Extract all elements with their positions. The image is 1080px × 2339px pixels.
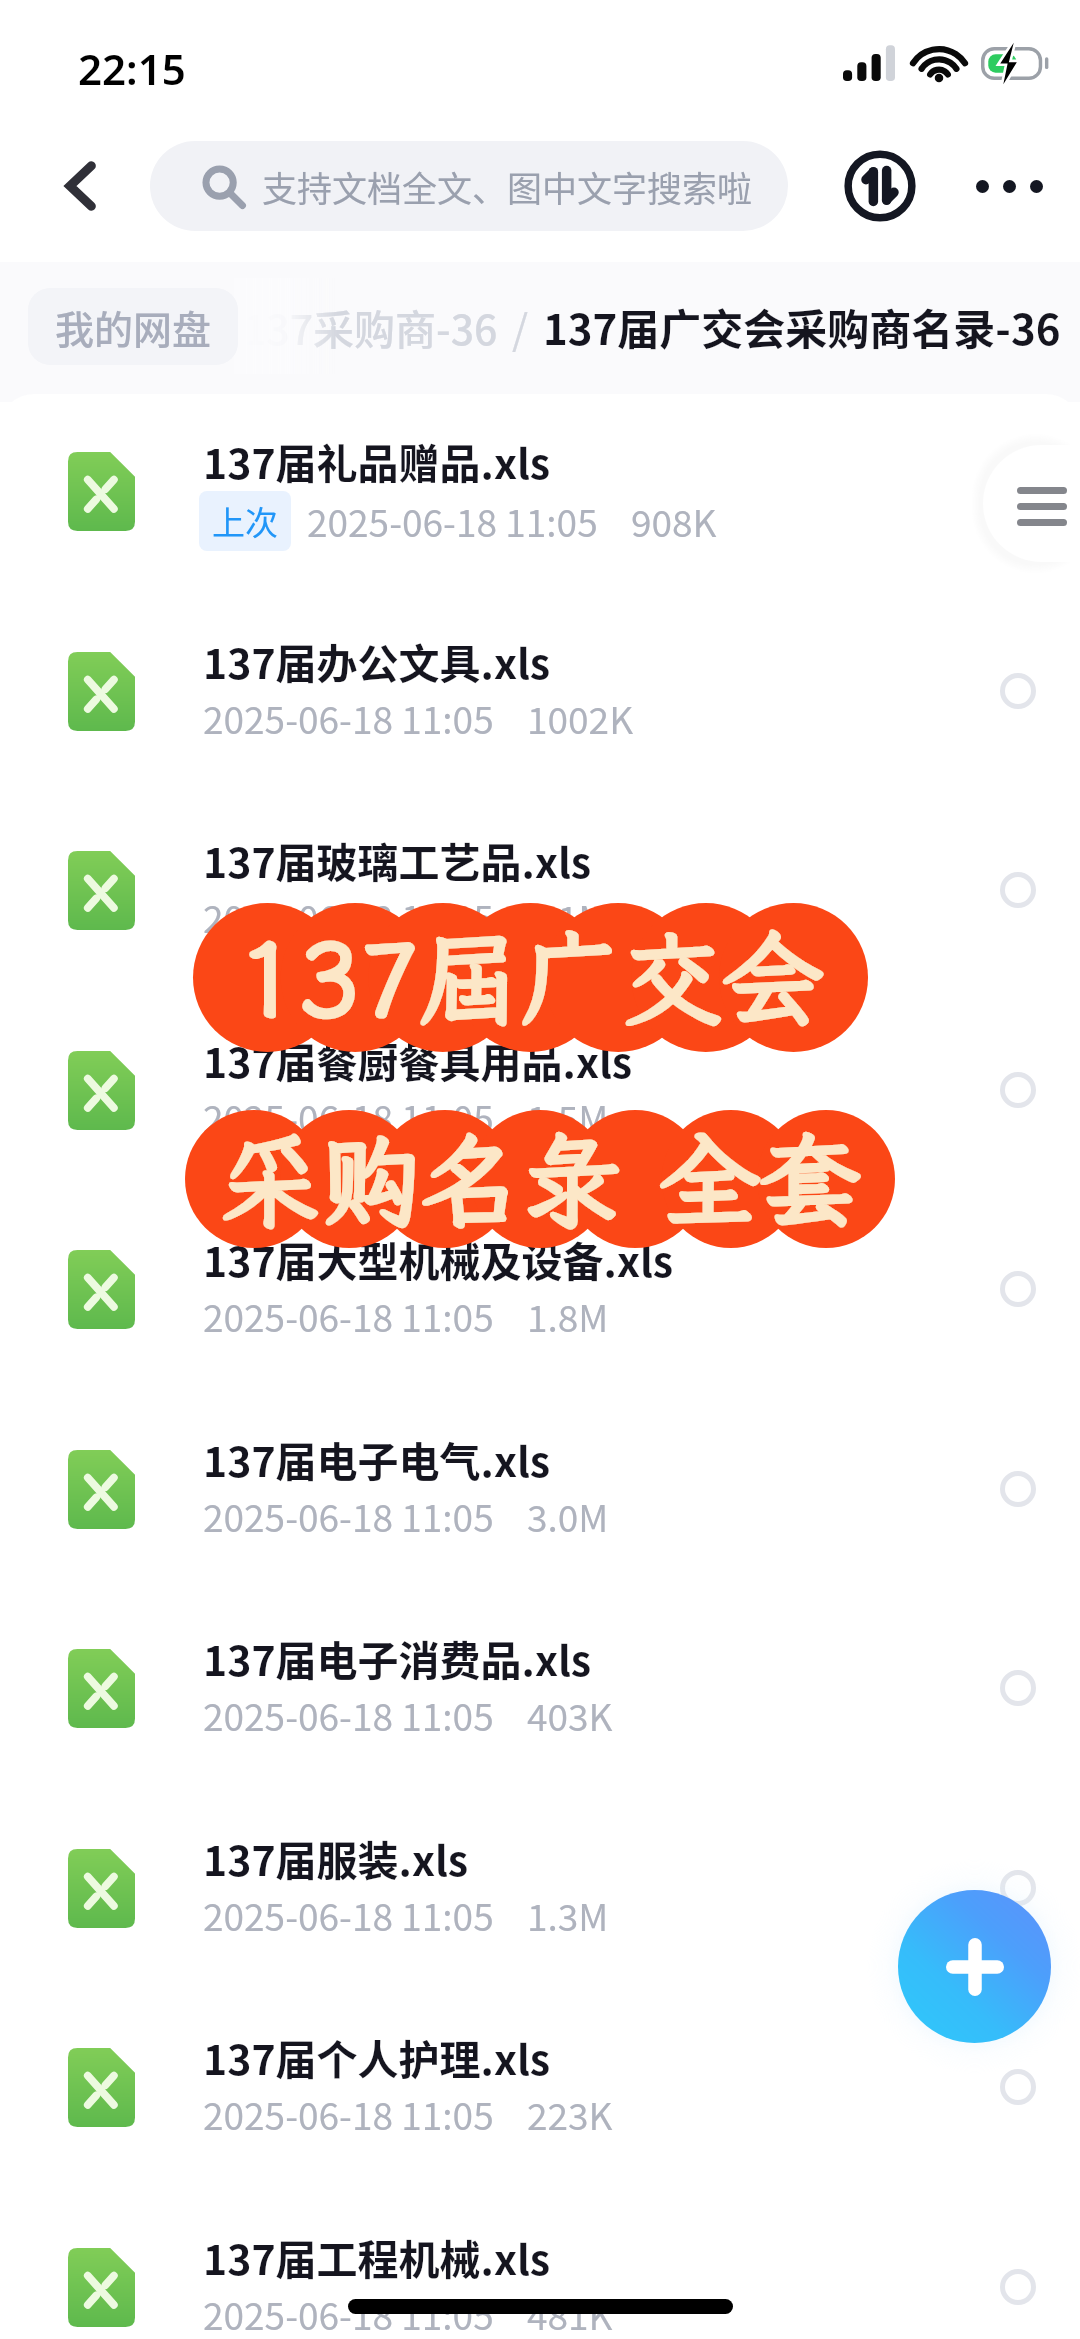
button[interactable]: Select xyxy=(973,2042,1063,2132)
staticText: 2025-06-18 11:05 xyxy=(307,494,598,548)
button[interactable]: Select xyxy=(973,1244,1063,1334)
staticText: 2025-06-18 11:05 xyxy=(203,890,494,944)
staticText: 22:15 xyxy=(78,40,186,97)
staticText: 137采购商-36 xyxy=(243,297,498,356)
button[interactable]: More options xyxy=(940,130,1080,242)
staticText: 223K xyxy=(527,2087,613,2141)
staticText: 2025-06-18 11:05 xyxy=(203,2087,494,2141)
staticText: 137届礼品赠品.xls xyxy=(203,431,551,490)
staticText: 137届个人护理.xls xyxy=(203,2027,551,2086)
staticText: 1.8M xyxy=(527,1289,609,1343)
staticText: 采购名录 全套 xyxy=(219,1113,861,1246)
button[interactable]: 137届礼品赠品.xls xyxy=(0,397,1080,596)
button[interactable]: Add xyxy=(898,1890,1051,2043)
staticText: 3.0M xyxy=(527,1489,609,1543)
button[interactable]: Select xyxy=(973,1643,1063,1733)
button[interactable]: Transfer list xyxy=(822,130,938,242)
button[interactable]: Sort xyxy=(983,445,1080,562)
button[interactable]: Select xyxy=(973,1045,1063,1135)
staticText: / xyxy=(512,297,529,356)
staticText: 2025-06-18 11:05 xyxy=(203,1489,494,1543)
button[interactable]: 137届办公文具.xls xyxy=(0,597,1080,796)
button[interactable]: Select xyxy=(973,646,1063,736)
button[interactable]: 137届个人护理.xls xyxy=(0,1993,1080,2192)
staticText: 137届办公文具.xls xyxy=(203,631,551,690)
button[interactable]: 我的网盘 xyxy=(28,288,238,365)
staticText: 2025-06-18 11:05 xyxy=(203,1090,494,1144)
button[interactable]: Select xyxy=(973,1444,1063,1534)
staticText: 支持文档全文、图中文字搜索啦 xyxy=(262,161,753,212)
staticText: 2025-06-18 11:05 xyxy=(203,1888,494,1942)
button[interactable]: Back xyxy=(24,130,136,242)
button[interactable]: 137届餐厨餐具用品.xls xyxy=(0,996,1080,1195)
button[interactable]: 支持文档全文、图中文字搜索啦 xyxy=(150,141,788,231)
staticText: 403K xyxy=(527,1688,613,1742)
staticText: 1.3M xyxy=(527,1888,609,1942)
button[interactable]: Select xyxy=(973,845,1063,935)
staticText: 137届服装.xls xyxy=(203,1828,469,1887)
staticText: 137届工程机械.xls xyxy=(203,2227,551,2286)
button[interactable]: Select xyxy=(973,1843,1063,1933)
button[interactable]: 137届电子消费品.xls xyxy=(0,1594,1080,1793)
button[interactable]: 137届大型机械及设备.xls xyxy=(0,1195,1080,1394)
button[interactable]: 137届工程机械.xls xyxy=(0,2193,1080,2339)
staticText: 137届餐厨餐具用品.xls xyxy=(203,1030,633,1089)
staticText: 1.5M xyxy=(527,1090,609,1144)
button[interactable]: Select xyxy=(973,2242,1063,2332)
staticText: 2025-06-18 11:05 xyxy=(203,2287,494,2339)
staticText: 1002K xyxy=(527,691,634,745)
staticText: 2025-06-18 11:05 xyxy=(203,691,494,745)
button[interactable]: 137届玻璃工艺品.xls xyxy=(0,796,1080,995)
staticText: 2025-06-18 11:05 xyxy=(203,1688,494,1742)
staticText: 137届电子消费品.xls xyxy=(203,1628,592,1687)
staticText: 137届广交会采购商名录-36 xyxy=(543,296,1061,357)
staticText: 我的网盘 xyxy=(55,299,212,355)
staticText: 1.1M xyxy=(527,890,609,944)
staticText: 上次 xyxy=(212,497,278,545)
staticText: 481K xyxy=(527,2287,613,2339)
button[interactable]: Select xyxy=(973,446,1063,536)
staticText: 137届玻璃工艺品.xls xyxy=(203,830,592,889)
staticText: 2025-06-18 11:05 xyxy=(203,1289,494,1343)
staticText: 137届电子电气.xls xyxy=(203,1429,551,1488)
staticText: 137届大型机械及设备.xls xyxy=(203,1229,674,1288)
button[interactable]: 137届服装.xls xyxy=(0,1794,1080,1993)
staticText: 908K xyxy=(631,494,717,548)
button[interactable]: 137届电子电气.xls xyxy=(0,1395,1080,1594)
staticText: 137届广交会 xyxy=(238,911,824,1044)
